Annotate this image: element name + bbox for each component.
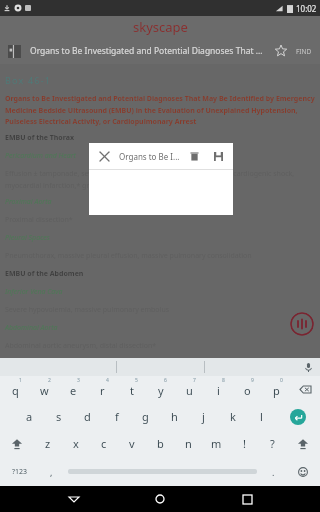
button[interactable]: x xyxy=(62,430,90,457)
staticText: g xyxy=(142,409,149,424)
staticText: t xyxy=(130,383,134,398)
staticText: 9 xyxy=(251,377,254,384)
button[interactable]: 3 xyxy=(59,376,88,403)
staticText: EMBU of the Abdomen xyxy=(5,269,84,279)
staticText: 4 xyxy=(106,377,109,384)
staticText: x xyxy=(73,436,79,451)
button[interactable]: 9 xyxy=(233,376,262,403)
button[interactable]: Play audio xyxy=(290,312,314,336)
button[interactable]: 8 xyxy=(204,376,233,403)
button[interactable]: a xyxy=(15,403,44,430)
button[interactable]: n xyxy=(174,430,202,457)
staticText: s xyxy=(56,409,62,424)
staticText: a xyxy=(26,409,33,424)
staticText: 5 xyxy=(135,377,138,384)
staticText: i xyxy=(217,383,220,398)
staticText: n xyxy=(185,436,192,451)
button[interactable]: , xyxy=(39,457,64,486)
staticText: 6 xyxy=(164,377,167,384)
button[interactable]: g xyxy=(131,403,160,430)
staticText: c xyxy=(101,436,107,451)
button[interactable]: . xyxy=(261,457,286,486)
staticText: Box 46-1 xyxy=(5,74,52,86)
staticText: l xyxy=(260,409,263,424)
button[interactable]: FIND xyxy=(294,47,314,56)
staticText: Proximal Aorta xyxy=(5,197,52,207)
staticText: 3 xyxy=(77,377,80,384)
staticText: b xyxy=(157,436,164,451)
button[interactable]: Book xyxy=(6,43,22,59)
staticText: 0 xyxy=(280,377,283,384)
staticText: p xyxy=(273,383,280,398)
button[interactable]: 7 xyxy=(175,376,204,403)
button[interactable]: ?123 xyxy=(0,457,39,486)
button[interactable]: 1 xyxy=(0,376,30,403)
button[interactable]: s xyxy=(44,403,73,430)
button[interactable]: j xyxy=(189,403,218,430)
button[interactable]: Organs to Be Investigated and Potential … xyxy=(30,45,268,57)
button[interactable]: Space xyxy=(64,457,261,486)
staticText: Organs to Be Investigated and Potential … xyxy=(5,94,315,126)
button[interactable]: 0 xyxy=(262,376,291,403)
button[interactable]: Recents xyxy=(234,486,260,512)
button[interactable]: Back xyxy=(61,486,87,512)
button[interactable]: l xyxy=(247,403,276,430)
button[interactable]: Shift xyxy=(0,430,34,457)
button[interactable]: Delete xyxy=(185,147,203,165)
button[interactable]: k xyxy=(218,403,247,430)
staticText: , xyxy=(50,466,53,478)
staticText: ! xyxy=(243,436,246,451)
button[interactable]: Close xyxy=(95,147,113,165)
button[interactable]: Enter xyxy=(276,403,320,430)
staticText: u xyxy=(186,383,193,398)
button[interactable]: Backspace xyxy=(291,376,320,403)
staticText: EMBU of the Thorax xyxy=(5,133,74,143)
staticText: . xyxy=(272,466,275,478)
staticText: Inferior Vena Cava xyxy=(5,287,63,297)
staticText: 7 xyxy=(193,377,196,384)
button[interactable]: 5 xyxy=(117,376,146,403)
button[interactable]: 2 xyxy=(30,376,59,403)
staticText: 8 xyxy=(222,377,225,384)
button[interactable]: c xyxy=(90,430,118,457)
staticText: r xyxy=(100,383,105,398)
staticText: Abdominal Aorta xyxy=(5,323,58,333)
staticText: e xyxy=(70,383,77,398)
button[interactable]: 6 xyxy=(146,376,175,403)
button[interactable]: Shift xyxy=(286,430,320,457)
button[interactable]: z xyxy=(34,430,62,457)
staticText: Pleural Spaces xyxy=(5,233,50,243)
staticText: h xyxy=(171,409,178,424)
staticText: Pericardium and Heart xyxy=(5,151,76,161)
button[interactable]: Save xyxy=(209,147,227,165)
staticText: k xyxy=(230,409,236,424)
staticText: y xyxy=(158,383,164,398)
staticText: v xyxy=(129,436,135,451)
staticText: skyscape xyxy=(133,18,188,36)
button[interactable]: Voice input xyxy=(302,361,314,373)
staticText: d xyxy=(84,409,91,424)
staticText: 2 xyxy=(48,377,51,384)
button[interactable]: d xyxy=(73,403,102,430)
button[interactable]: Bookmark xyxy=(272,42,290,60)
button[interactable]: Home xyxy=(147,486,173,512)
staticText: 1 xyxy=(19,377,22,384)
button[interactable]: m xyxy=(202,430,230,457)
button[interactable]: 4 xyxy=(88,376,117,403)
staticText: j xyxy=(202,409,205,424)
staticText: f xyxy=(115,409,119,424)
staticText: ? xyxy=(270,436,275,451)
button[interactable]: Emoji xyxy=(286,457,320,486)
button[interactable]: f xyxy=(102,403,131,430)
button[interactable]: ? xyxy=(258,430,286,457)
staticText: o xyxy=(244,383,251,398)
button[interactable]: h xyxy=(160,403,189,430)
button[interactable]: ! xyxy=(230,430,258,457)
staticText: Organs to Be Investigated and Potential … xyxy=(30,45,268,57)
staticText: q xyxy=(12,383,19,398)
button[interactable]: v xyxy=(118,430,146,457)
button[interactable]: b xyxy=(146,430,174,457)
